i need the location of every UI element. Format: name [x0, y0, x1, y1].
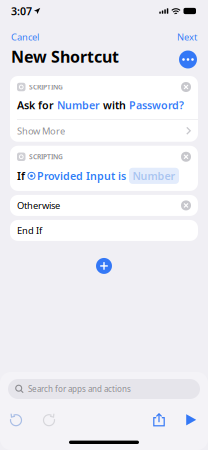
- button[interactable]: Run shortcut: [176, 409, 206, 431]
- button[interactable]: Next: [168, 23, 206, 45]
- button[interactable]: Undo: [0, 409, 32, 431]
- staticText: Number: [132, 169, 175, 183]
- staticText: Password?: [129, 98, 184, 112]
- staticText: Next: [177, 31, 197, 43]
- staticText: End If: [17, 224, 42, 237]
- staticText: Search for apps and actions: [28, 384, 131, 394]
- staticText: 3:07: [11, 4, 32, 18]
- staticText: Cancel: [11, 31, 39, 43]
- button[interactable]: Share: [142, 409, 176, 431]
- button[interactable]: Add action: [89, 251, 119, 281]
- button[interactable]: Show More: [10, 120, 198, 142]
- button[interactable]: More options: [176, 47, 200, 71]
- staticText: SCRIPTING: [29, 152, 63, 161]
- button[interactable]: Redo: [32, 409, 66, 431]
- staticText: with: [103, 98, 126, 112]
- staticText: Otherwise: [17, 199, 60, 212]
- staticText: SCRIPTING: [29, 83, 63, 91]
- staticText: is: [118, 169, 126, 183]
- button[interactable]: Cancel: [2, 23, 48, 45]
- staticText: Show More: [17, 125, 65, 137]
- staticText: New Shortcut: [11, 46, 119, 67]
- staticText: Provided Input: [37, 169, 115, 183]
- staticText: Number: [57, 98, 100, 112]
- staticText: If: [17, 169, 25, 183]
- staticText: Ask for: [17, 98, 54, 112]
